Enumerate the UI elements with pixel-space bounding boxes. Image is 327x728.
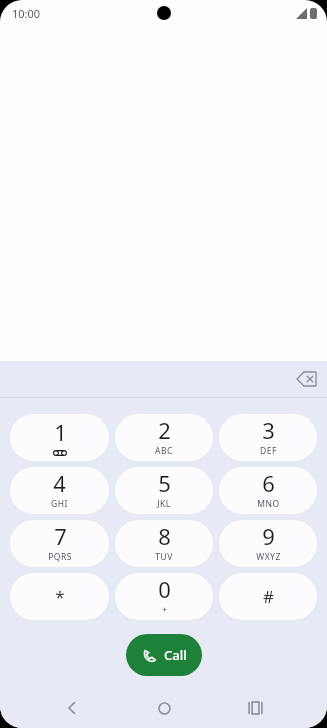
button[interactable]: Backspace bbox=[293, 366, 319, 392]
staticText: TUV bbox=[155, 551, 173, 563]
staticText: ABC bbox=[155, 445, 173, 457]
button[interactable]: 6 bbox=[219, 467, 317, 514]
button[interactable]: Home bbox=[144, 688, 184, 728]
staticText: * bbox=[55, 585, 65, 608]
button[interactable]: 1 bbox=[10, 414, 109, 461]
staticText: WXYZ bbox=[256, 551, 281, 563]
staticText: 9 bbox=[262, 521, 275, 551]
button[interactable]: 9 bbox=[219, 520, 317, 567]
staticText: 3 bbox=[262, 415, 275, 445]
staticText: DEF bbox=[260, 445, 277, 457]
button[interactable]: 2 bbox=[115, 414, 213, 461]
staticText: + bbox=[162, 604, 168, 615]
staticText: 4 bbox=[53, 468, 66, 498]
staticText: MNO bbox=[257, 498, 280, 510]
button[interactable]: Call bbox=[126, 634, 202, 676]
button[interactable]: Back bbox=[52, 688, 92, 728]
button[interactable]: 7 bbox=[10, 520, 109, 567]
staticText: PQRS bbox=[48, 551, 72, 563]
staticText: 10:00 bbox=[12, 6, 41, 21]
button[interactable]: # bbox=[219, 573, 317, 620]
staticText: GHI bbox=[51, 498, 68, 510]
button[interactable]: Recent apps bbox=[235, 688, 275, 728]
button[interactable]: * bbox=[10, 573, 109, 620]
staticText: 6 bbox=[262, 468, 275, 498]
button[interactable]: 0 bbox=[115, 573, 213, 620]
button[interactable]: 8 bbox=[115, 520, 213, 567]
staticText: 2 bbox=[158, 415, 171, 445]
button[interactable]: 3 bbox=[219, 414, 317, 461]
button[interactable]: 4 bbox=[10, 467, 109, 514]
staticText: Call bbox=[164, 646, 187, 664]
staticText: 0 bbox=[158, 574, 171, 604]
staticText: 7 bbox=[54, 521, 67, 551]
staticText: 5 bbox=[158, 468, 171, 498]
staticText: JKL bbox=[157, 498, 171, 510]
button[interactable]: 5 bbox=[115, 467, 213, 514]
staticText: 8 bbox=[158, 521, 171, 551]
staticText: 1 bbox=[54, 417, 67, 447]
staticText: # bbox=[263, 585, 274, 608]
